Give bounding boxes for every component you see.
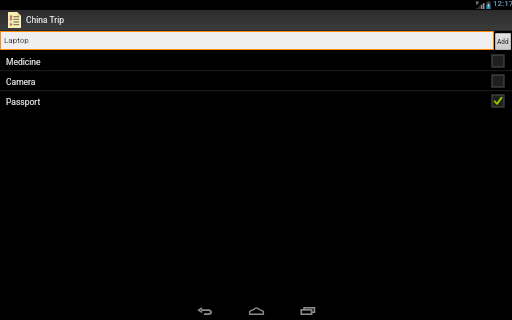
button[interactable]: Passport: [0, 90, 512, 110]
button[interactable]: Back: [186, 301, 223, 320]
staticText: Laptop: [4, 36, 29, 45]
button[interactable]: Home: [238, 301, 275, 320]
other: Unchecked Medicine: [492, 55, 504, 67]
button[interactable]: Camera: [0, 70, 512, 90]
staticText: China Trip: [26, 15, 65, 25]
other: Checked Passport: [492, 95, 504, 107]
staticText: Add: [497, 38, 509, 46]
staticText: Medicine: [6, 57, 41, 67]
staticText: Passport: [6, 97, 41, 107]
button[interactable]: Medicine: [0, 50, 512, 70]
button[interactable]: Add: [496, 34, 510, 49]
staticText: 12:17: [493, 0, 512, 8]
staticText: Camera: [6, 77, 36, 87]
other: Unchecked Camera: [492, 75, 504, 87]
button[interactable]: Recent apps: [289, 301, 326, 320]
button[interactable]: Laptop: [1, 32, 493, 49]
